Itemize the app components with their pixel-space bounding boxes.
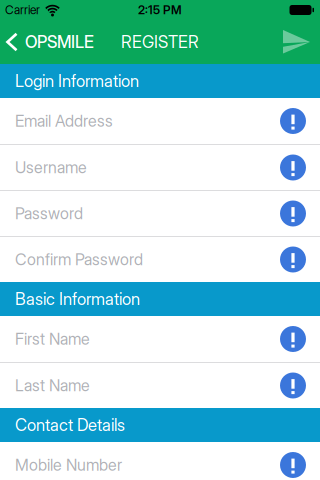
staticText: Username	[15, 158, 87, 177]
button[interactable]: Info	[280, 372, 320, 398]
button[interactable]: Info	[280, 200, 320, 226]
staticText: 2:15 PM	[138, 3, 182, 17]
staticText: Password	[15, 204, 83, 223]
staticText: Contact Details	[15, 415, 125, 435]
staticText: Basic Information	[15, 289, 140, 309]
staticText: OPSMILE	[25, 32, 94, 52]
staticText: Mobile Number	[15, 455, 122, 475]
staticText: First Name	[15, 329, 90, 349]
staticText: Email Address	[15, 111, 113, 131]
staticText: Last Name	[15, 376, 90, 395]
button[interactable]: Info	[280, 452, 320, 478]
button[interactable]: Info	[280, 246, 320, 272]
button[interactable]: Back	[0, 32, 94, 52]
staticText: Carrier	[5, 3, 40, 17]
staticText: Confirm Password	[15, 250, 143, 269]
button[interactable]: Info	[280, 108, 320, 134]
button[interactable]: Info	[280, 154, 320, 180]
button[interactable]: Send	[283, 30, 320, 54]
button[interactable]: Info	[280, 326, 320, 352]
staticText: Login Information	[15, 71, 139, 91]
staticText: REGISTER	[121, 32, 199, 52]
